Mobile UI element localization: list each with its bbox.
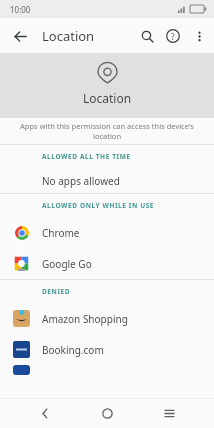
button[interactable]: Home [90,398,124,428]
button[interactable] [0,365,214,375]
button[interactable]: Back [28,398,62,428]
button[interactable]: Recent apps [152,398,186,428]
staticText: 10:00 [10,4,31,15]
staticText: No apps allowed [42,174,120,188]
staticText: DENIED [42,287,71,296]
staticText: ? [171,31,175,42]
staticText: Google Go [42,257,92,271]
button[interactable]: Search [134,23,160,49]
staticText: ALLOWED ONLY WHILE IN USE [42,201,155,210]
staticText: Location [83,90,132,106]
button[interactable]: Google Go [0,248,214,279]
staticText: Location [42,27,95,45]
button[interactable]: No apps allowed [0,168,214,193]
button[interactable]: Chrome [0,217,214,248]
button[interactable]: Help [160,23,186,49]
staticText: Chrome [42,226,80,240]
staticText: Apps with this permission can access thi… [20,121,194,141]
staticText: Booking.com [42,343,104,357]
button[interactable]: More options [186,23,212,49]
staticText: ALLOWED ALL THE TIME [42,152,131,161]
button[interactable]: Back [6,22,34,50]
button[interactable]: Amazon Shopping [0,303,214,334]
staticText: Amazon Shopping [42,312,128,326]
button[interactable]: Booking.com [0,334,214,365]
